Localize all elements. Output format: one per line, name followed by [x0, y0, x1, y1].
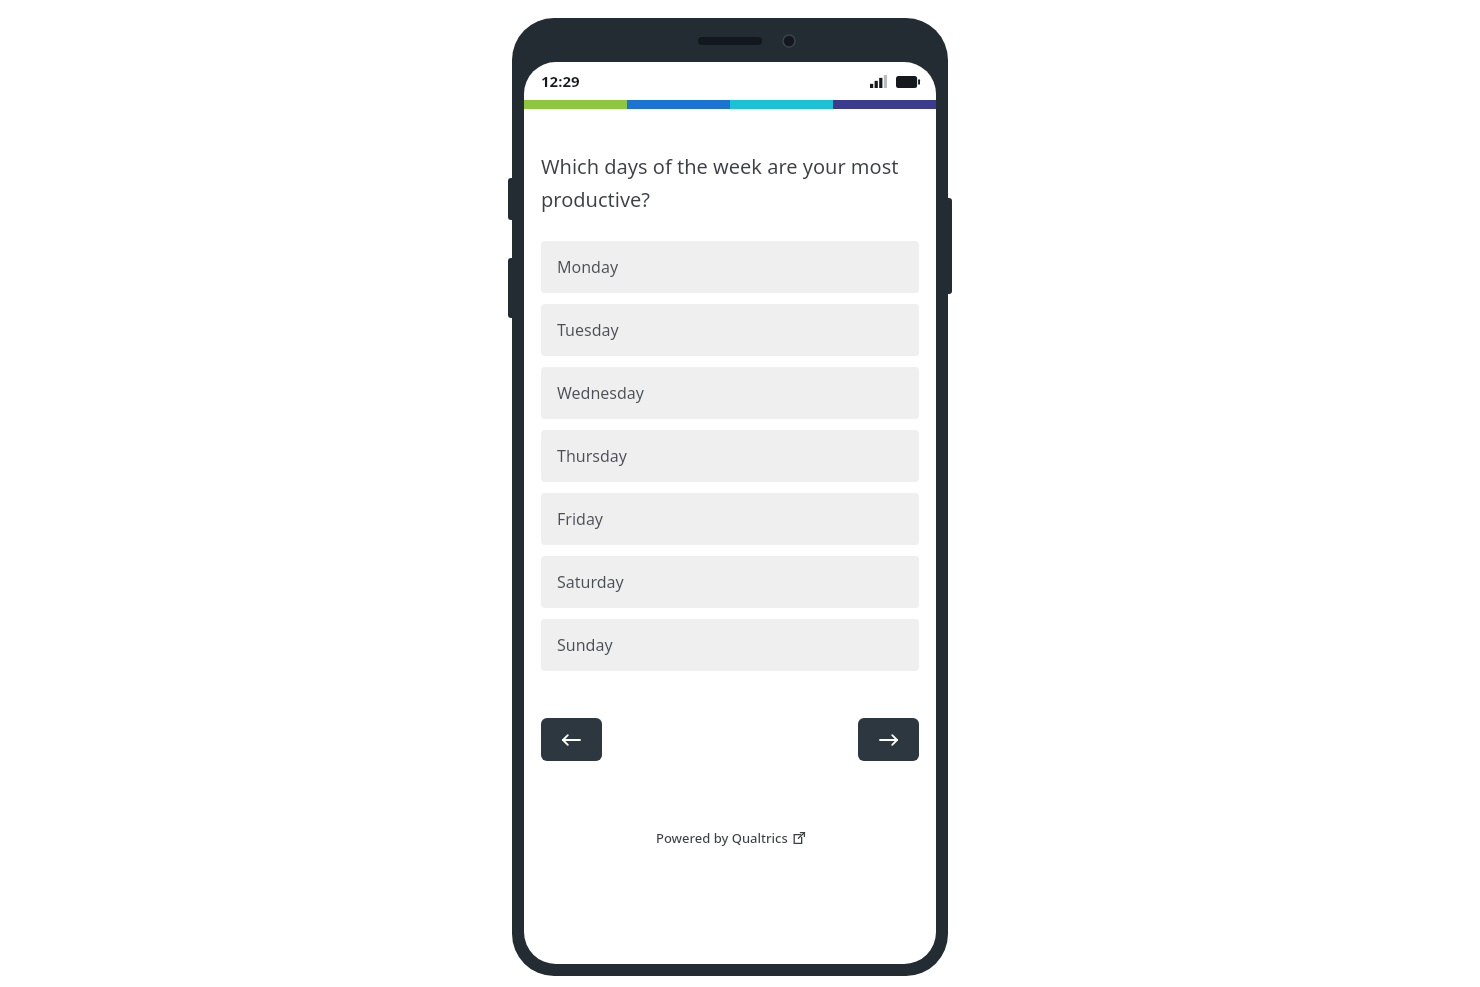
button[interactable]: Next: [858, 718, 919, 761]
button[interactable]: Thursday: [541, 430, 919, 482]
staticText: Saturday: [557, 571, 624, 593]
staticText: 12:29: [541, 71, 580, 91]
button[interactable]: Sunday: [541, 619, 919, 671]
staticText: Friday: [557, 508, 604, 530]
button[interactable]: Powered by Qualtrics: [524, 829, 936, 847]
button[interactable]: Saturday: [541, 556, 919, 608]
staticText: Sunday: [557, 634, 613, 656]
staticText: Powered by Qualtrics: [656, 829, 788, 847]
button[interactable]: Friday: [541, 493, 919, 545]
button[interactable]: Tuesday: [541, 304, 919, 356]
staticText: Which days of the week are your most pro…: [541, 153, 912, 213]
staticText: Thursday: [557, 445, 627, 467]
staticText: Wednesday: [557, 382, 644, 404]
staticText: Monday: [557, 256, 619, 278]
button[interactable]: Monday: [541, 241, 919, 293]
button[interactable]: Back: [541, 718, 602, 761]
staticText: Tuesday: [557, 319, 619, 341]
button[interactable]: Wednesday: [541, 367, 919, 419]
